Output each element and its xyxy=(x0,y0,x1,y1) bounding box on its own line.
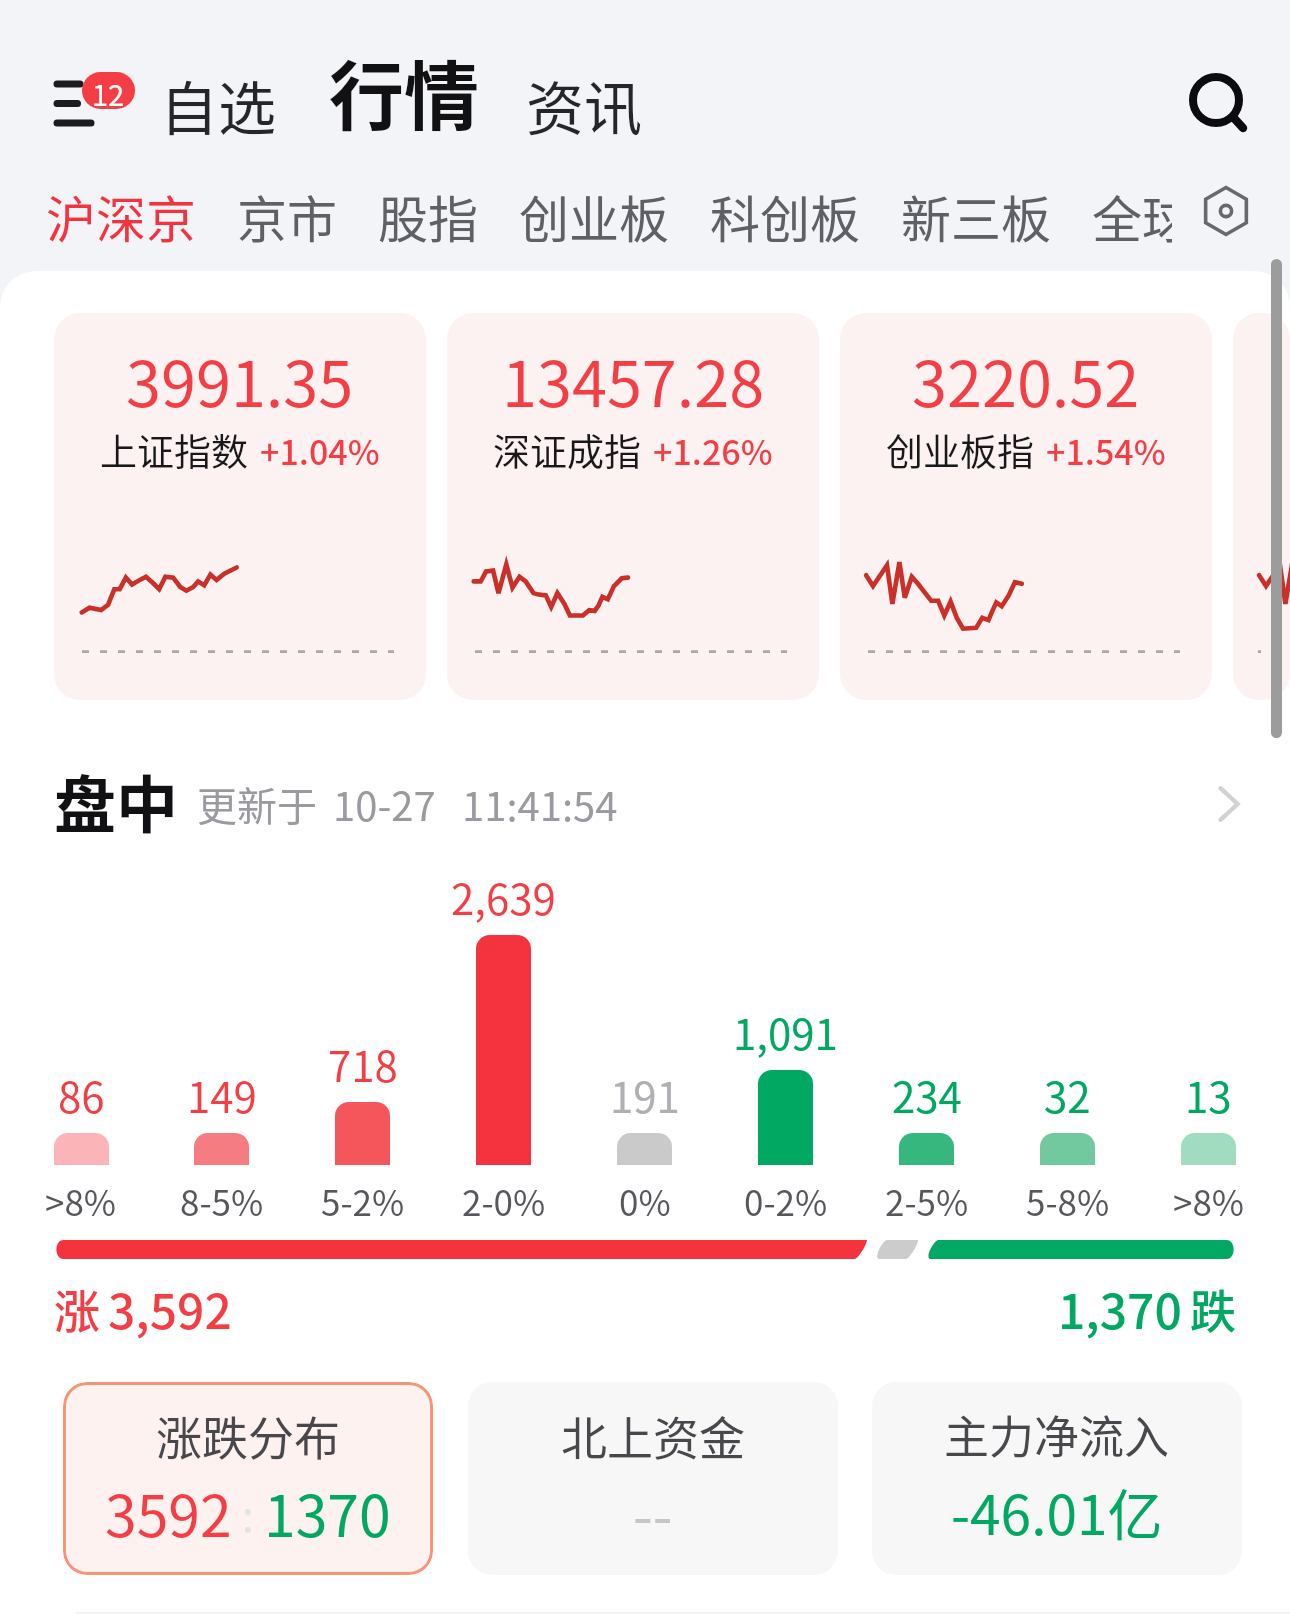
staticText: 自选 xyxy=(160,63,277,147)
staticText: 0-2% xyxy=(744,1175,828,1226)
staticText: 新三板 xyxy=(901,180,1051,252)
staticText: 149 xyxy=(187,1064,257,1125)
staticText: 3,592 xyxy=(108,1273,232,1343)
staticText: 1,091 xyxy=(733,1001,838,1062)
button[interactable] xyxy=(1233,313,1290,700)
staticText: 创业板指 xyxy=(886,423,1034,477)
staticText: 主力净流入 xyxy=(944,1402,1170,1467)
staticText: -46.01亿 xyxy=(951,1471,1163,1551)
staticText: 3220.52 xyxy=(912,334,1140,425)
staticText: +1.26% xyxy=(653,426,773,475)
staticText: 跌 xyxy=(1190,1275,1236,1342)
button[interactable]: Menu xyxy=(48,55,160,147)
staticText: 沪深京 xyxy=(46,180,196,252)
staticText: 京市 xyxy=(237,180,337,252)
button[interactable]: 资讯 xyxy=(526,63,643,147)
staticText: 创业板 xyxy=(519,180,669,252)
staticText: 2-5% xyxy=(885,1175,969,1226)
staticText: 11:41:54 xyxy=(462,775,618,833)
staticText: 行情 xyxy=(329,37,480,146)
staticText: 2,639 xyxy=(451,866,556,927)
staticText: 5-8% xyxy=(1026,1175,1110,1226)
button[interactable]: 京市 xyxy=(237,180,378,252)
staticText: 12 xyxy=(92,72,125,109)
staticText: 北上资金 xyxy=(561,1402,745,1469)
button[interactable]: 主力净流入 xyxy=(872,1382,1242,1575)
button[interactable]: 行情 xyxy=(329,37,480,146)
button[interactable]: 新三板 xyxy=(901,180,1092,252)
button[interactable]: 涨跌分布 xyxy=(63,1382,433,1575)
button[interactable]: 全球 xyxy=(1092,180,1233,252)
staticText: 13457.28 xyxy=(502,334,765,425)
staticText: 更新于 xyxy=(197,775,317,833)
button[interactable]: 北上资金 xyxy=(468,1382,838,1575)
staticText: 全球 xyxy=(1092,180,1192,252)
button[interactable]: 股指 xyxy=(378,180,519,252)
staticText: 涨 xyxy=(54,1275,100,1342)
staticText: 13 xyxy=(1185,1064,1232,1125)
staticText: 资讯 xyxy=(526,63,643,147)
staticText: 86 xyxy=(58,1064,105,1125)
staticText: 盘中 xyxy=(54,756,179,844)
staticText: 深证成指 xyxy=(493,423,641,477)
staticText: 10-27 xyxy=(333,775,436,833)
button[interactable]: 沪深京 xyxy=(46,180,237,252)
staticText: 涨跌分布 xyxy=(156,1402,340,1469)
staticText: +1.04% xyxy=(260,426,380,475)
button[interactable]: Settings xyxy=(1172,157,1280,265)
staticText: -- xyxy=(633,1471,673,1554)
staticText: 5-2% xyxy=(321,1175,405,1226)
button[interactable]: Search xyxy=(1166,43,1282,159)
staticText: 234 xyxy=(892,1064,962,1125)
staticText: >8% xyxy=(45,1175,117,1226)
staticText: 0% xyxy=(619,1175,671,1226)
staticText: 上证指数 xyxy=(100,423,248,477)
button[interactable]: 3220.52 xyxy=(840,313,1212,700)
staticText: 3991.35 xyxy=(126,334,354,425)
staticText: 3592 xyxy=(105,1471,232,1554)
staticText: 1,370 xyxy=(1058,1273,1182,1343)
staticText: 32 xyxy=(1044,1064,1091,1125)
staticText: 191 xyxy=(610,1064,680,1125)
button[interactable]: 创业板 xyxy=(519,180,710,252)
staticText: >8% xyxy=(1173,1175,1245,1226)
staticText: 718 xyxy=(328,1033,398,1094)
staticText: : xyxy=(232,1481,264,1545)
staticText: +1.54% xyxy=(1046,426,1166,475)
button[interactable]: 盘中 xyxy=(54,760,1246,848)
button[interactable]: 自选 xyxy=(160,63,277,147)
button[interactable]: 13457.28 xyxy=(447,313,819,700)
staticText: 2-0% xyxy=(462,1175,546,1226)
staticText: 股指 xyxy=(378,180,478,252)
button[interactable]: 3991.35 xyxy=(54,313,426,700)
staticText: 科创板 xyxy=(710,180,860,252)
button[interactable]: 科创板 xyxy=(710,180,901,252)
staticText: 8-5% xyxy=(180,1175,264,1226)
staticText: 1370 xyxy=(264,1471,391,1554)
